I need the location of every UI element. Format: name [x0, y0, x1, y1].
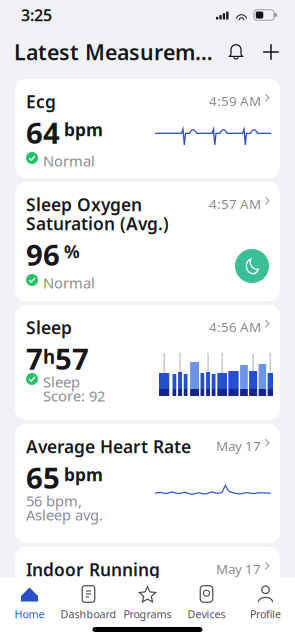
staticText: Score: 92	[43, 386, 105, 405]
staticText: 57	[55, 339, 89, 378]
button[interactable]: Notifications	[223, 38, 249, 66]
staticText: Profile	[250, 607, 281, 621]
staticText: May 17	[216, 437, 261, 455]
staticText: Latest Measureme...	[14, 38, 217, 66]
staticText: 56 bpm,	[26, 491, 82, 510]
staticText: Sleep	[26, 316, 72, 339]
staticText: 4:57 AM	[209, 195, 261, 213]
staticText: Home	[14, 607, 44, 621]
button[interactable]: Programs	[118, 578, 177, 617]
staticText: May 17	[216, 560, 261, 578]
button[interactable]: Average Heart Rate	[15, 424, 280, 543]
staticText: Normal	[43, 273, 95, 292]
staticText: 7	[26, 339, 43, 378]
staticText: 4:56 AM	[209, 318, 261, 336]
staticText: Ecg	[26, 90, 56, 113]
staticText: Normal	[43, 151, 95, 170]
staticText: Dashboard	[60, 607, 116, 621]
staticText: 3:25	[21, 4, 52, 26]
button[interactable]: Add measurement	[249, 38, 281, 66]
button[interactable]: Ecg	[15, 79, 280, 178]
staticText: Devices	[187, 607, 225, 621]
button[interactable]: Dashboard	[59, 578, 118, 617]
staticText: 4:59 AM	[209, 92, 261, 110]
staticText: Saturation (Avg.)	[26, 212, 169, 235]
staticText: %	[64, 240, 80, 263]
staticText: Asleep avg.	[26, 505, 103, 524]
staticText: 64	[26, 113, 60, 152]
staticText: 65	[26, 458, 60, 497]
staticText: bpm	[64, 463, 103, 486]
button[interactable]: Sleep	[15, 305, 280, 420]
staticText: Sleep Oxygen	[26, 193, 142, 216]
staticText: Sleep	[43, 372, 80, 391]
staticText: Programs	[123, 607, 171, 621]
staticText: h	[43, 344, 55, 369]
button[interactable]: Devices	[177, 578, 236, 617]
staticText: Indoor Running	[26, 558, 160, 581]
staticText: 96	[26, 235, 60, 274]
staticText: bpm	[64, 118, 103, 141]
button[interactable]: Home	[0, 578, 59, 617]
button[interactable]: Indoor Running	[15, 547, 280, 640]
staticText: Average Heart Rate	[26, 435, 191, 458]
button[interactable]: Sleep Oxygen	[15, 182, 280, 301]
button[interactable]: Profile	[236, 578, 295, 617]
